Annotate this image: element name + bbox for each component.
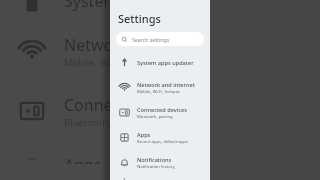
staticText: Network & internet (64, 34, 209, 56)
button[interactable]: Notifications (112, 153, 208, 172)
staticText: Bluetooth, pairing (64, 116, 145, 128)
staticText: Connected devices (137, 106, 187, 114)
staticText: Apps (137, 131, 151, 139)
button[interactable]: System (0, 0, 320, 18)
staticText: Notification history, conversations (137, 164, 202, 170)
staticText: Settings (118, 11, 161, 26)
button[interactable]: Network & internet (0, 34, 320, 68)
staticText: Search settings (132, 36, 170, 43)
button[interactable]: Apps (0, 154, 320, 164)
staticText: Apps (64, 154, 102, 164)
staticText: System apps updater (137, 59, 194, 67)
staticText: Network and internet (137, 81, 195, 89)
button[interactable]: Connected devices (0, 94, 320, 128)
button[interactable]: Apps (112, 128, 208, 147)
staticText: Connected devices (64, 94, 205, 116)
button[interactable]: System apps updater (112, 54, 208, 71)
button[interactable]: Connected devices (112, 103, 208, 122)
staticText: Mobile, Wi-Fi, hotspot (64, 56, 161, 68)
staticText: Mobile, Wi-Fi, hotspot (137, 89, 180, 95)
button[interactable]: Battery (112, 178, 208, 180)
button[interactable]: Network and internet (112, 78, 208, 97)
staticText: System (64, 0, 119, 12)
staticText: Bluetooth, pairing (137, 114, 173, 120)
staticText: Recent apps, default apps (137, 139, 188, 145)
staticText: Notifications (137, 156, 172, 164)
button[interactable]: Search settings (116, 32, 204, 46)
